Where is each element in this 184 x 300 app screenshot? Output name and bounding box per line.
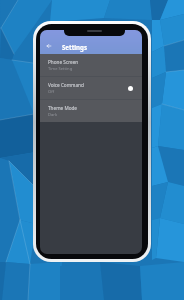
button[interactable]: Back [46, 43, 52, 49]
button[interactable]: Voice Command [40, 77, 142, 99]
staticText: Voice Command [48, 82, 84, 88]
button[interactable]: Theme Mode [40, 100, 142, 122]
staticText: Off [48, 89, 55, 95]
staticText: Dark [48, 112, 58, 118]
staticText: Theme Mode [48, 105, 78, 111]
staticText: Time Setting [48, 66, 73, 72]
button[interactable]: Phone Screen [40, 54, 142, 76]
staticText: Settings [62, 43, 87, 51]
staticText: Phone Screen [48, 59, 79, 65]
